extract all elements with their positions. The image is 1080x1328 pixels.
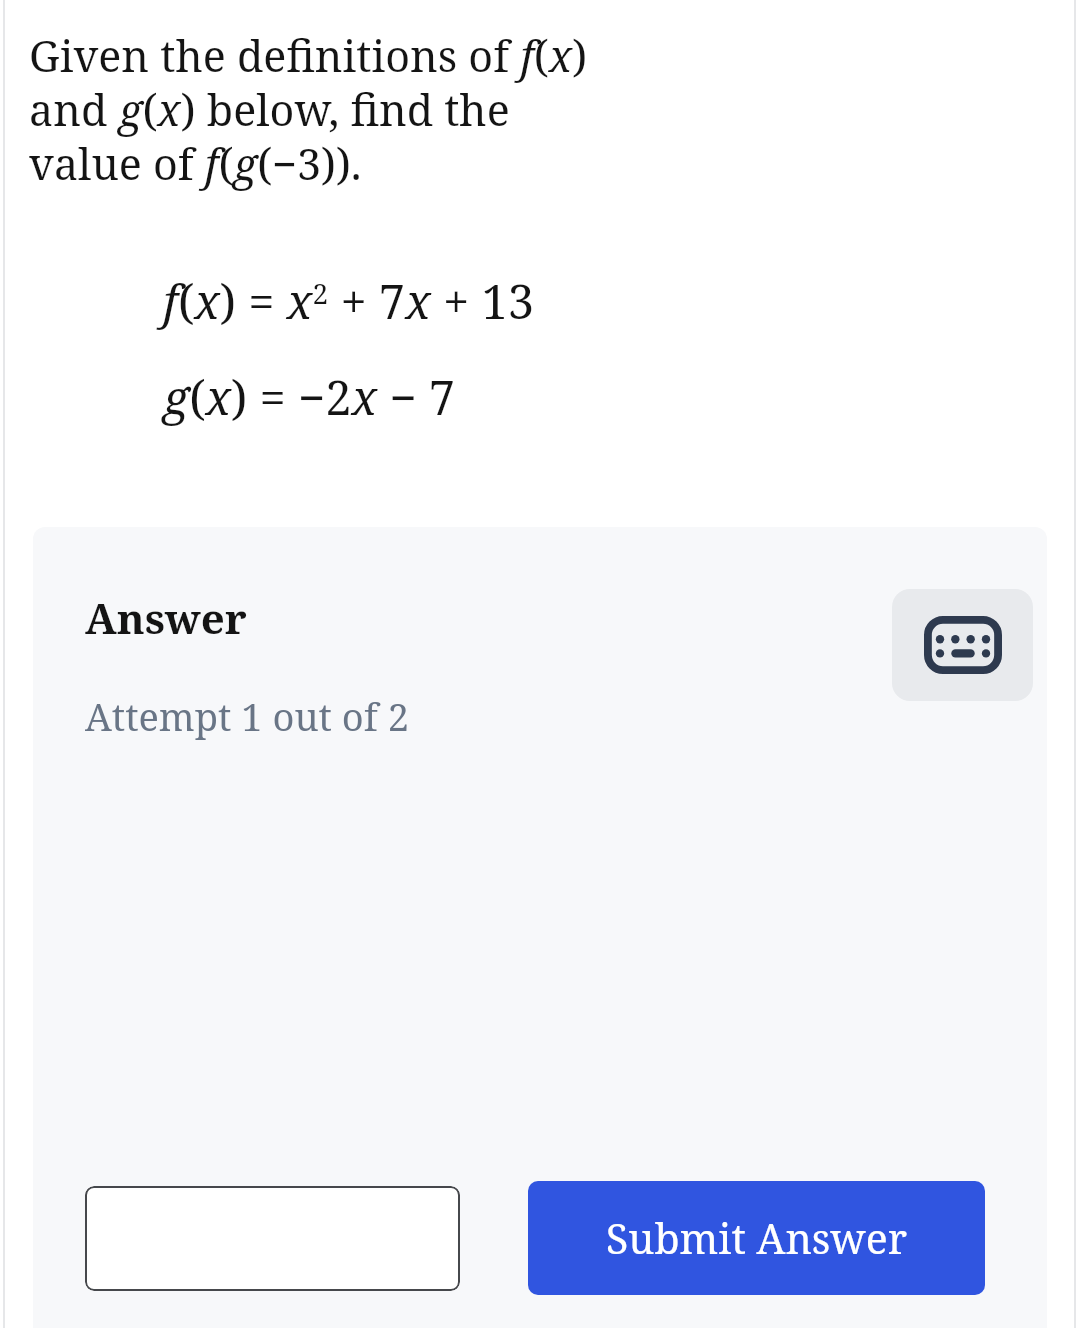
staticText: Answer [85, 589, 247, 646]
staticText: g(x) = −2x − 7 [163, 365, 456, 429]
button[interactable]: Answer input [85, 1186, 460, 1291]
staticText: Submit Answer [606, 1210, 907, 1266]
staticText: Attempt 1 out of 2 [85, 690, 409, 742]
button[interactable]: Toggle math keyboard [892, 589, 1033, 701]
button[interactable]: Submit Answer [528, 1181, 985, 1295]
staticText: Given the definitions of f(x) and g(x) b… [29, 26, 588, 193]
staticText: f(x) = x2 + 7x + 13 [163, 269, 535, 333]
